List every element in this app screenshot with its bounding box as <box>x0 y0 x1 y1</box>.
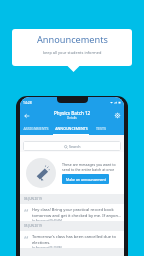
staticText: by Anurag at 05:10 PM <box>32 246 62 248</box>
staticText: Physics Batch 12 <box>54 110 91 116</box>
button[interactable]: Search <box>23 141 121 151</box>
staticText: keep all your students informed <box>43 50 102 55</box>
button[interactable]: ANNOUNCEMENTS <box>53 122 89 135</box>
staticText: Details <box>67 116 77 120</box>
button[interactable]: TESTS <box>94 122 107 135</box>
staticText: Make an announcement <box>66 177 106 182</box>
staticText: 14:28 <box>23 100 32 105</box>
staticText: TESTS <box>96 126 106 131</box>
button[interactable]: Tomorrow's class has been cancelled due … <box>20 231 124 248</box>
staticText: Hey class! Bring your practical record b… <box>32 207 121 218</box>
staticText: 05 JUN 2019 <box>24 224 42 228</box>
button[interactable]: Make an announcement <box>62 174 109 184</box>
button[interactable]: Settings <box>111 109 124 122</box>
staticText: ASSIGNMENTS <box>23 126 49 131</box>
staticText: Tomorrow's class has been cancelled due … <box>32 234 116 245</box>
staticText: Search <box>69 144 81 149</box>
staticText: by Anurag at 09:40 AM <box>32 219 62 221</box>
button[interactable]: ASSIGNMENTS <box>22 122 49 135</box>
staticText: ANNOUNCEMENTS <box>55 126 88 131</box>
staticText: Announcements <box>37 33 108 46</box>
staticText: 06 JUN 2019 <box>24 197 42 201</box>
button[interactable]: Back <box>20 109 33 122</box>
button[interactable]: Hey class! Bring your practical record b… <box>20 204 124 221</box>
staticText: These are messages you want to send to t… <box>62 162 116 172</box>
